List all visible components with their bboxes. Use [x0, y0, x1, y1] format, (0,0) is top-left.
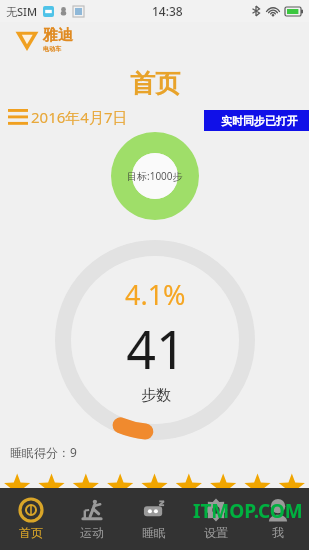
staticText: 睡眠	[142, 525, 166, 540]
staticText: 运动	[80, 525, 104, 540]
staticText: 雅迪	[43, 26, 73, 45]
button[interactable]: Sleep	[123, 488, 185, 550]
button[interactable]: 4.1%	[55, 240, 255, 440]
other: Menu	[8, 109, 28, 126]
other: Settings	[204, 498, 228, 522]
staticText: 14:38	[152, 3, 183, 19]
staticText: 电动车	[43, 45, 61, 53]
button[interactable]: 目标:1000步	[111, 132, 199, 220]
button[interactable]: Me	[247, 488, 309, 550]
button[interactable]: Home	[0, 488, 61, 550]
staticText: 我	[272, 525, 284, 540]
button[interactable]: 睡眠得分：9	[10, 444, 77, 460]
staticText: 4.1%	[125, 276, 186, 313]
staticText: 首页	[130, 68, 180, 99]
other: Exercise	[80, 498, 104, 522]
other: Home	[19, 498, 43, 522]
button[interactable]: Menu	[8, 107, 128, 127]
staticText: 实时同步已打开	[221, 114, 298, 128]
staticText: ITMOP.COM	[193, 498, 303, 524]
staticText: 目标:1000步	[127, 169, 183, 183]
staticText: 无SIM	[6, 4, 38, 19]
other: Me	[266, 498, 290, 522]
other: Sleep	[142, 498, 166, 522]
button[interactable]: 实时同步已打开	[204, 110, 309, 131]
staticText: 2016年4月7日	[31, 107, 128, 127]
staticText: 步数	[141, 386, 171, 405]
button[interactable]: Settings	[185, 488, 247, 550]
button[interactable]: Exercise	[61, 488, 123, 550]
staticText: 设置	[204, 525, 228, 540]
staticText: 首页	[19, 525, 43, 540]
staticText: 41	[126, 313, 186, 384]
